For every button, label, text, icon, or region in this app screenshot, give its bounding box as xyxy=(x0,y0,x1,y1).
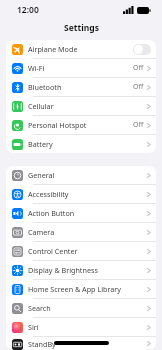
button[interactable]: Search xyxy=(6,299,156,317)
staticText: Personal Hotspot xyxy=(28,120,133,130)
staticText: Accessibility xyxy=(28,189,147,199)
staticText: Off xyxy=(133,82,144,92)
button[interactable]: Action Button xyxy=(6,204,156,222)
staticText: Cellular xyxy=(28,101,147,111)
button[interactable]: Battery xyxy=(6,135,156,153)
staticText: Action Button xyxy=(28,208,147,218)
button[interactable]: StandBy xyxy=(6,337,156,350)
staticText: StandBy xyxy=(28,339,147,349)
staticText: Home Screen & App Library xyxy=(28,284,147,294)
staticText: Settings xyxy=(64,22,99,34)
button[interactable]: Camera xyxy=(6,223,156,241)
button[interactable]: Cellular xyxy=(6,97,156,115)
staticText: 12:00 xyxy=(17,4,39,16)
staticText: Off xyxy=(133,120,144,130)
staticText: Bluetooth xyxy=(28,82,133,92)
staticText: Display & Brightness xyxy=(28,265,147,275)
button[interactable]: Personal Hotspot xyxy=(6,116,156,134)
button[interactable]: Control Center xyxy=(6,242,156,260)
button[interactable]: Siri xyxy=(6,318,156,336)
button[interactable]: Airplane Mode xyxy=(6,40,156,58)
staticText: Search xyxy=(28,303,147,313)
staticText: Control Center xyxy=(28,246,147,256)
button[interactable]: Accessibility xyxy=(6,185,156,203)
staticText: Camera xyxy=(28,227,147,237)
staticText: Off xyxy=(133,63,144,73)
button[interactable]: Airplane Mode toggle xyxy=(133,44,151,55)
button[interactable]: Display & Brightness xyxy=(6,261,156,279)
staticText: Wi-Fi xyxy=(28,63,133,73)
staticText: Siri xyxy=(28,322,147,332)
staticText: Battery xyxy=(28,139,147,149)
button[interactable]: Bluetooth xyxy=(6,78,156,96)
staticText: General xyxy=(28,170,147,180)
button[interactable]: General xyxy=(6,166,156,184)
button[interactable]: Home Screen & App Library xyxy=(6,280,156,298)
staticText: Airplane Mode xyxy=(28,44,133,54)
button[interactable]: Wi-Fi xyxy=(6,59,156,77)
